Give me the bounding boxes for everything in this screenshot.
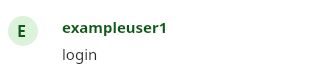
staticText: E [17,20,26,42]
other: exampleuser1 avatar [8,16,38,46]
staticText: login [62,44,98,64]
staticText: exampleuser1 [62,17,168,37]
button[interactable]: exampleuser1 avatar [0,0,334,70]
